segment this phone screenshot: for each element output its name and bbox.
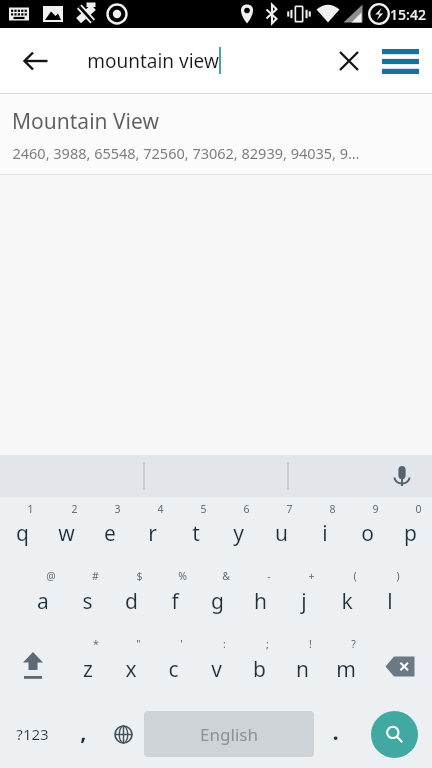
staticText: ' [180,637,183,651]
staticText: l [387,587,393,616]
staticText: 3 [114,502,121,516]
staticText: h [254,587,267,616]
button[interactable]: 5 [174,497,217,564]
staticText: English [200,723,258,746]
staticText: 7 [286,502,293,516]
staticText: # [92,569,99,583]
button[interactable]: Voice input [382,456,422,496]
button[interactable]: + [282,564,325,632]
staticText: 4 [157,502,164,516]
staticText: x [125,655,137,684]
staticText: c [168,655,179,684]
staticText: " [136,637,141,651]
button[interactable]: * [66,632,109,700]
staticText: n [296,655,309,684]
button[interactable]: ; [238,632,281,700]
staticText: % [178,569,187,583]
staticText: y [233,519,244,548]
staticText: u [275,519,288,548]
staticText: ) [396,569,400,583]
staticText: o [361,519,374,548]
staticText: 6 [243,502,250,516]
button[interactable]: Switch language [102,700,144,768]
button[interactable]: Open menu [374,35,426,87]
button[interactable]: Mountain View [0,94,432,174]
button[interactable]: ' [152,632,195,700]
staticText: & [222,569,230,583]
button[interactable]: Navigate up [12,37,60,85]
button[interactable]: - [239,564,282,632]
button[interactable]: 4 [131,497,174,564]
button[interactable]: " [109,632,152,700]
staticText: f [171,587,179,616]
button[interactable]: ) [368,564,411,632]
button[interactable]: ?123 [0,700,64,768]
staticText: j [301,587,307,616]
staticText: m [336,655,356,684]
staticText: * [93,637,99,651]
button[interactable]: 7 [260,497,303,564]
staticText: ?123 [16,724,49,744]
button[interactable]: , [64,700,102,768]
staticText: r [148,519,157,548]
button[interactable]: 0 [389,497,432,564]
staticText: b [253,655,266,684]
staticText: Mountain View [12,107,159,136]
staticText: 5 [200,502,207,516]
button[interactable]: Search [371,711,418,758]
staticText: @ [46,569,56,583]
button[interactable]: 6 [217,497,260,564]
staticText: v [211,655,222,684]
staticText: ; [266,637,269,651]
staticText: - [267,569,271,583]
staticText: 0 [415,502,422,516]
staticText: 9 [372,502,379,516]
button[interactable]: % [153,564,196,632]
staticText: g [211,587,224,616]
staticText: s [82,587,93,616]
staticText: 2 [71,502,78,516]
staticText: 1 [27,502,34,516]
button[interactable]: $ [109,564,153,632]
staticText: + [308,569,315,583]
button[interactable]: ( [325,564,368,632]
staticText: . [332,716,339,746]
staticText: z [83,655,93,684]
staticText: mountain view [87,48,219,74]
button[interactable]: 1 [0,497,44,564]
button[interactable]: 2 [44,497,88,564]
staticText: 2460, 3988, 65548, 72560, 73062, 82939, … [12,143,360,163]
staticText: d [125,587,138,616]
button[interactable]: ! [281,632,324,700]
button[interactable]: 8 [303,497,346,564]
button[interactable]: @ [21,564,65,632]
staticText: ! [309,637,312,651]
staticText: k [341,587,353,616]
staticText: , [80,716,87,746]
button[interactable]: : [195,632,238,700]
staticText: e [104,519,116,548]
button[interactable]: English [144,711,314,757]
button[interactable]: . [314,700,356,768]
button[interactable]: # [65,564,109,632]
staticText: a [37,587,49,616]
button[interactable]: 3 [88,497,131,564]
staticText: 15:42 [390,5,426,24]
button[interactable]: 9 [346,497,389,564]
button[interactable]: Clear search [326,38,372,84]
staticText: ? [351,637,356,651]
button[interactable]: Backspace [367,632,432,700]
button[interactable]: Shift [0,632,66,700]
staticText: 8 [329,502,336,516]
staticText: w [58,519,75,548]
staticText: i [322,519,328,548]
staticText: : [223,637,226,651]
button[interactable]: & [196,564,239,632]
staticText: ( [353,569,357,583]
staticText: p [404,519,417,548]
staticText: q [16,519,29,548]
staticText: $ [136,569,143,583]
button[interactable]: ? [324,632,367,700]
staticText: t [192,519,200,548]
